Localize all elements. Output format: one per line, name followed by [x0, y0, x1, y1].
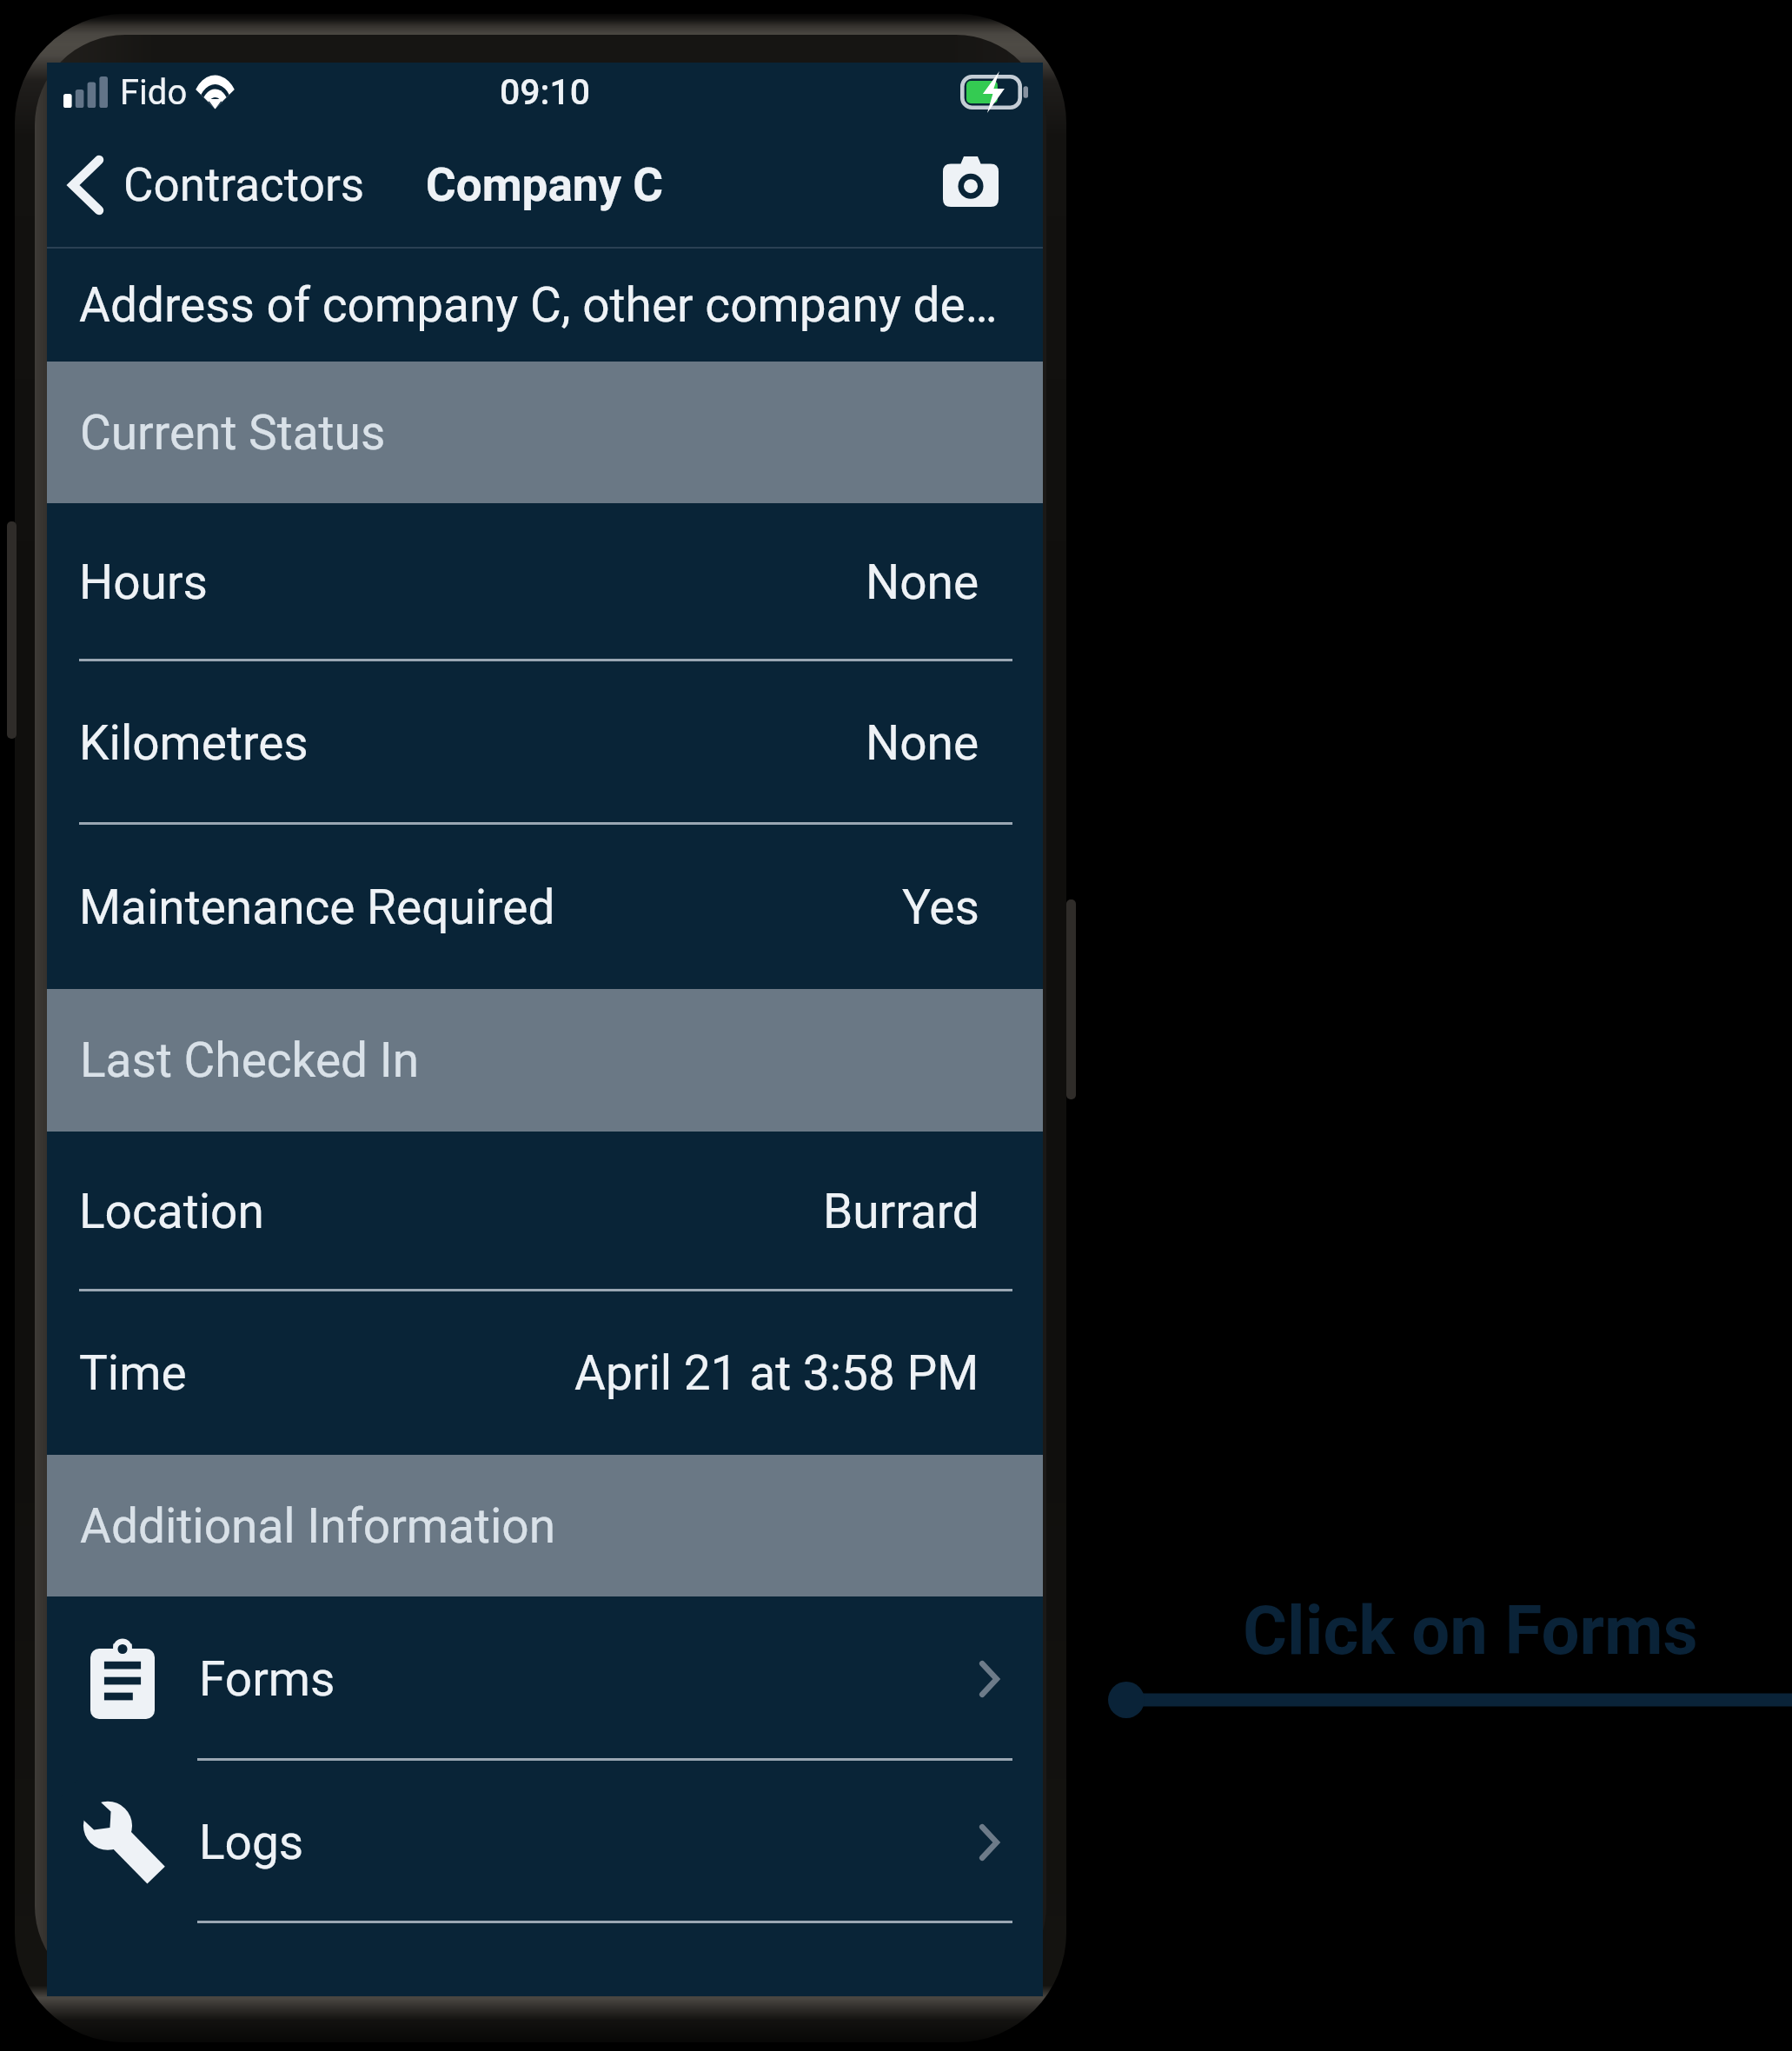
- staticText: Company C: [426, 158, 664, 212]
- staticText: Last Checked In: [80, 1032, 420, 1088]
- button[interactable]: Maintenance Required: [47, 825, 1043, 989]
- staticText: 09:10: [500, 71, 591, 113]
- staticText: Address of company C, other company de…: [79, 277, 998, 333]
- button[interactable]: Take photo: [933, 144, 1008, 219]
- staticText: Burrard: [823, 1184, 979, 1239]
- button[interactable]: Location: [47, 1132, 1043, 1291]
- staticText: None: [866, 554, 979, 610]
- button[interactable]: Forms: [47, 1596, 1043, 1761]
- staticText: None: [866, 715, 979, 771]
- button[interactable]: Hours: [47, 503, 1043, 661]
- staticText: April 21 at 3:58 PM: [574, 1345, 979, 1401]
- staticText: Kilometres: [79, 715, 309, 771]
- staticText: Maintenance Required: [79, 879, 555, 935]
- button[interactable]: Time: [47, 1291, 1043, 1455]
- staticText: Current Status: [80, 405, 386, 461]
- staticText: Contractors: [123, 158, 365, 212]
- button[interactable]: Contractors: [68, 138, 365, 232]
- staticText: Additional Information: [80, 1498, 556, 1554]
- button[interactable]: Kilometres: [47, 661, 1043, 825]
- staticText: Logs: [199, 1815, 304, 1870]
- button[interactable]: Logs: [47, 1761, 1043, 1923]
- staticText: Yes: [902, 879, 979, 935]
- staticText: Forms: [199, 1651, 335, 1707]
- staticText: Click on Forms: [1243, 1591, 1698, 1670]
- staticText: Hours: [79, 554, 208, 610]
- button[interactable]: Address of company C, other company de…: [47, 249, 1043, 362]
- staticText: Location: [79, 1184, 264, 1239]
- staticText: Time: [79, 1345, 187, 1401]
- staticText: Fido: [120, 72, 188, 113]
